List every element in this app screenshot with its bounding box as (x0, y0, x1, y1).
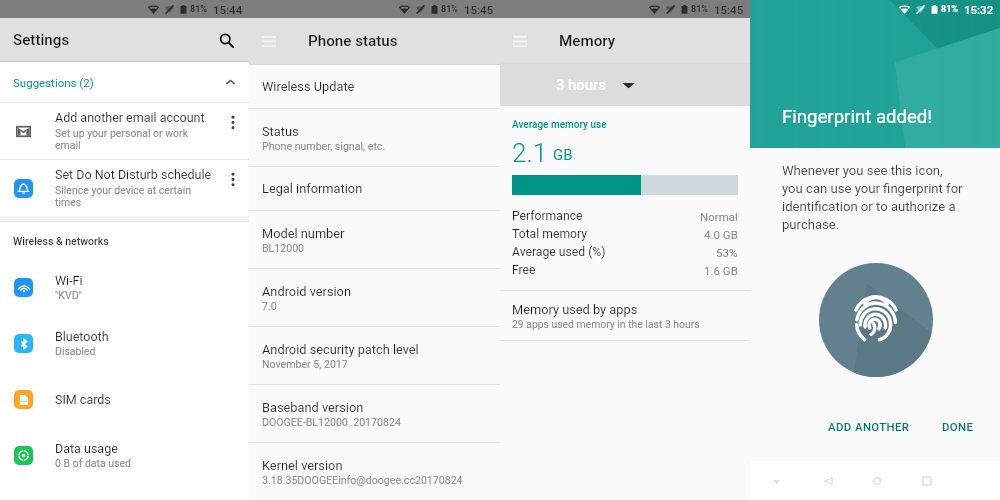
staticText: Disabled (55, 345, 96, 357)
staticText: 3 hours (556, 76, 606, 93)
button[interactable]: Hide keyboard (766, 472, 786, 492)
staticText: DONE (942, 420, 974, 433)
button[interactable]: Search (214, 28, 238, 52)
staticText: Kernel version (262, 458, 343, 473)
button[interactable]: Wi-Fi (0, 259, 249, 315)
staticText: 15:32 (964, 3, 994, 16)
other: Menu (262, 36, 276, 47)
staticText: Wi-Fi (55, 273, 83, 288)
staticText: Phone number, signal, etc. (262, 140, 386, 152)
staticText: 53% (716, 246, 738, 259)
staticText: Free (512, 263, 536, 277)
button[interactable]: DONE (930, 413, 986, 440)
staticText: Data usage (55, 441, 118, 456)
button[interactable]: Menu (258, 30, 280, 52)
button[interactable]: Suggestions (2) (0, 62, 249, 102)
staticText: Average memory use (512, 119, 607, 131)
staticText: 81% (691, 4, 708, 15)
button[interactable]: Model number (249, 211, 500, 268)
staticText: Wireless Update (262, 79, 355, 94)
button[interactable]: Kernel version (249, 443, 500, 500)
button[interactable]: Menu (509, 30, 531, 52)
button[interactable]: Baseband version (249, 385, 500, 442)
button[interactable]: Bluetooth (0, 315, 249, 371)
button[interactable]: Legal information (249, 167, 500, 210)
staticText: 81% (441, 4, 458, 15)
staticText: 0 B of data used (55, 457, 131, 469)
staticText: DOOGEE-BL12000 .20170824 (262, 416, 401, 428)
staticText: Wireless & networks (13, 235, 109, 247)
button[interactable]: SIM cards (0, 371, 249, 427)
staticText: Suggestions (2) (13, 76, 94, 89)
staticText: 2.1 (512, 138, 548, 168)
staticText: BL12000 (262, 242, 305, 254)
staticText: Whenever you see this icon, you can use … (782, 163, 963, 233)
button[interactable]: More options (222, 111, 244, 133)
staticText: Set Do Not Disturb schedule (55, 167, 212, 182)
staticText: Bluetooth (55, 329, 109, 344)
staticText: Add another email account (55, 110, 205, 125)
staticText: Status (262, 124, 299, 139)
button[interactable]: Memory used by apps (500, 291, 750, 340)
staticText: Performance (512, 209, 583, 223)
staticText: Normal (700, 210, 738, 223)
staticText: 29 apps used memory in the last 3 hours (512, 318, 700, 330)
button[interactable]: Set Do Not Disturb schedule (0, 160, 249, 216)
button[interactable]: Recent apps (917, 471, 937, 491)
button[interactable]: ADD ANOTHER (816, 413, 922, 440)
staticText: Silence your device at certain times (55, 184, 192, 209)
staticText: Android security patch level (262, 342, 419, 357)
staticText: GB (553, 146, 573, 164)
button[interactable]: Android version (249, 269, 500, 326)
staticText: 3.18.35DOOGEEinfo@doogee.cc20170824 (262, 474, 463, 486)
button[interactable]: More options (222, 168, 244, 190)
staticText: Fingerprint added! (782, 106, 933, 128)
button[interactable]: Add another email account (0, 103, 249, 159)
staticText: Memory (559, 32, 616, 50)
button[interactable]: Wireless Update (249, 65, 500, 108)
staticText: Phone status (308, 32, 398, 50)
staticText: Android version (262, 284, 351, 299)
staticText: Average used (%) (512, 245, 606, 259)
staticText: "KVD" (55, 289, 82, 301)
staticText: 81% (941, 4, 958, 15)
button[interactable]: Status (249, 109, 500, 166)
button[interactable]: Home (867, 471, 887, 491)
staticText: Set up your personal or work email (55, 127, 188, 152)
staticText: Memory used by apps (512, 302, 638, 317)
staticText: 15:45 (464, 3, 494, 16)
button[interactable]: Android security patch level (249, 327, 500, 384)
staticText: ADD ANOTHER (828, 420, 910, 433)
staticText: 7.0 (262, 300, 277, 312)
staticText: 4.0 GB (704, 228, 738, 241)
staticText: Settings (13, 31, 70, 49)
staticText: 81% (190, 4, 207, 15)
button[interactable]: Data usage (0, 427, 249, 483)
staticText: Total memory (512, 227, 588, 241)
staticText: 1.6 GB (704, 264, 738, 277)
staticText: Model number (262, 226, 345, 241)
staticText: SIM cards (55, 392, 111, 407)
staticText: 15:44 (213, 3, 243, 16)
staticText: Baseband version (262, 400, 364, 415)
button[interactable]: 3 hours (500, 63, 750, 106)
button[interactable]: Back (818, 471, 838, 491)
staticText: 15:45 (714, 3, 744, 16)
other: Menu (513, 36, 527, 47)
staticText: November 5, 2017 (262, 358, 348, 370)
staticText: Legal information (262, 181, 363, 196)
